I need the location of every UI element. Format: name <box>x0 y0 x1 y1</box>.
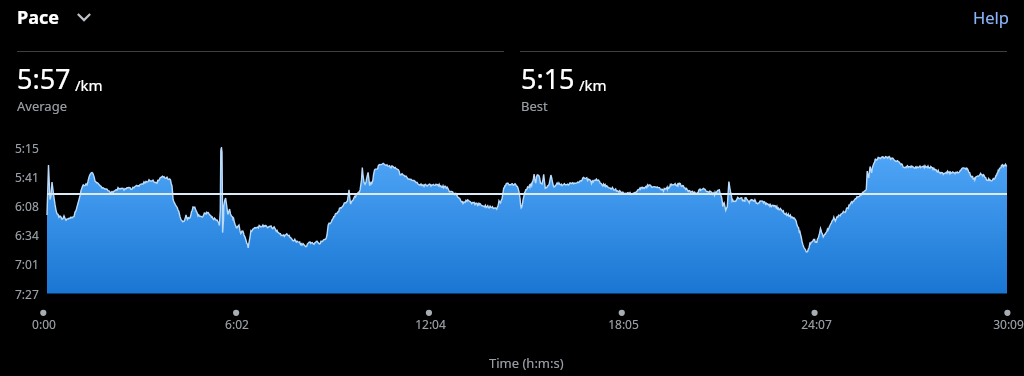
staticText: Pace <box>17 5 59 30</box>
staticText: 6:34 <box>15 227 39 243</box>
button[interactable]: Help <box>961 0 1019 38</box>
staticText: 0:00 <box>32 316 56 332</box>
staticText: Best <box>521 97 548 115</box>
staticText: 6:02 <box>225 316 249 332</box>
other: Change metric <box>77 7 91 25</box>
staticText: 6:08 <box>15 198 39 214</box>
staticText: /km <box>75 75 103 95</box>
staticText: 5:57 <box>17 60 71 97</box>
staticText: 5:15 <box>15 140 39 156</box>
button[interactable]: 5:15 <box>521 60 607 115</box>
staticText: 5:41 <box>15 169 39 185</box>
staticText: 7:27 <box>15 286 39 302</box>
staticText: 5:15 <box>521 60 575 97</box>
staticText: Help <box>973 6 1009 28</box>
staticText: 18:05 <box>608 316 639 332</box>
button[interactable]: Pace <box>9 0 109 38</box>
staticText: Average <box>17 97 67 115</box>
staticText: 12:04 <box>415 316 446 332</box>
staticText: Time (h:m:s) <box>489 354 564 372</box>
staticText: 7:01 <box>15 256 39 272</box>
staticText: 24:07 <box>801 316 832 332</box>
staticText: 30:09 <box>993 316 1024 332</box>
staticText: /km <box>579 75 607 95</box>
button[interactable]: 5:57 <box>17 60 103 115</box>
